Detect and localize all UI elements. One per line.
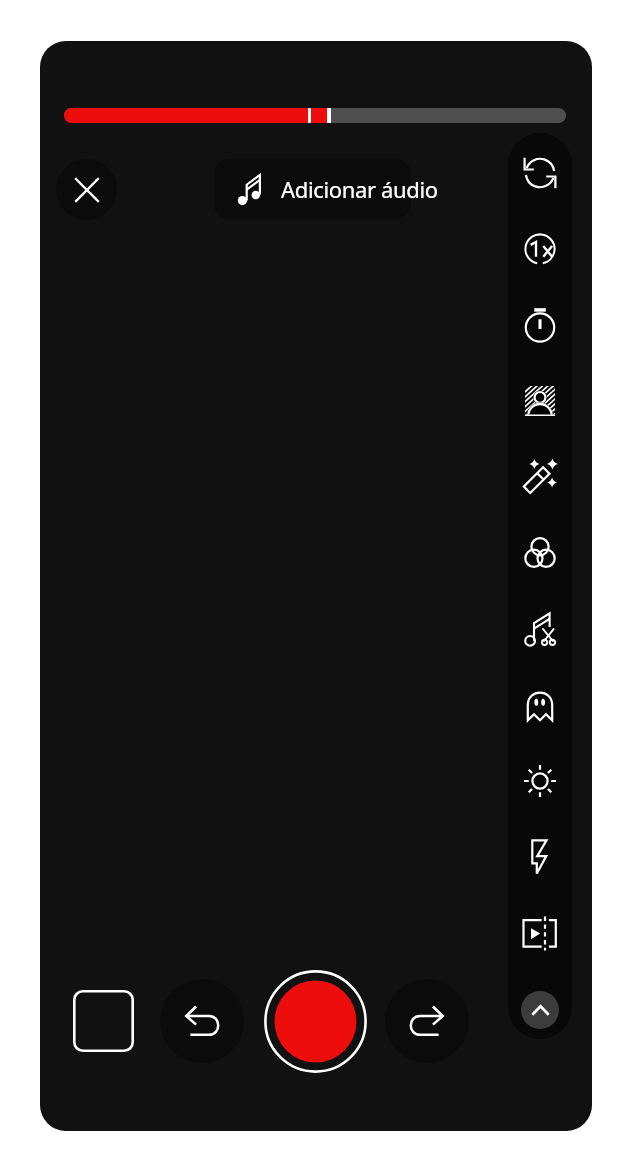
button[interactable]: Close [56,159,117,220]
button[interactable] [214,159,411,219]
button[interactable]: Enhance [508,445,572,509]
button[interactable]: Timer [508,293,572,357]
button[interactable]: Filters [508,521,572,585]
button[interactable]: Ghost [508,673,572,737]
button[interactable]: Background blur [508,369,572,433]
button[interactable]: Transition [508,901,572,965]
button[interactable]: Gallery [73,990,134,1052]
button[interactable]: Brightness [508,749,572,813]
button[interactable]: Undo [160,979,244,1063]
button[interactable]: Redo [385,979,469,1063]
button[interactable]: Flip camera [508,141,572,205]
button[interactable]: Playback speed [508,217,572,281]
button[interactable]: Trim audio [508,597,572,661]
button[interactable]: Record [264,970,367,1073]
button[interactable]: Collapse tools [521,991,559,1029]
button[interactable]: Flash [508,825,572,889]
staticText: Adicionar áudio [281,174,438,204]
